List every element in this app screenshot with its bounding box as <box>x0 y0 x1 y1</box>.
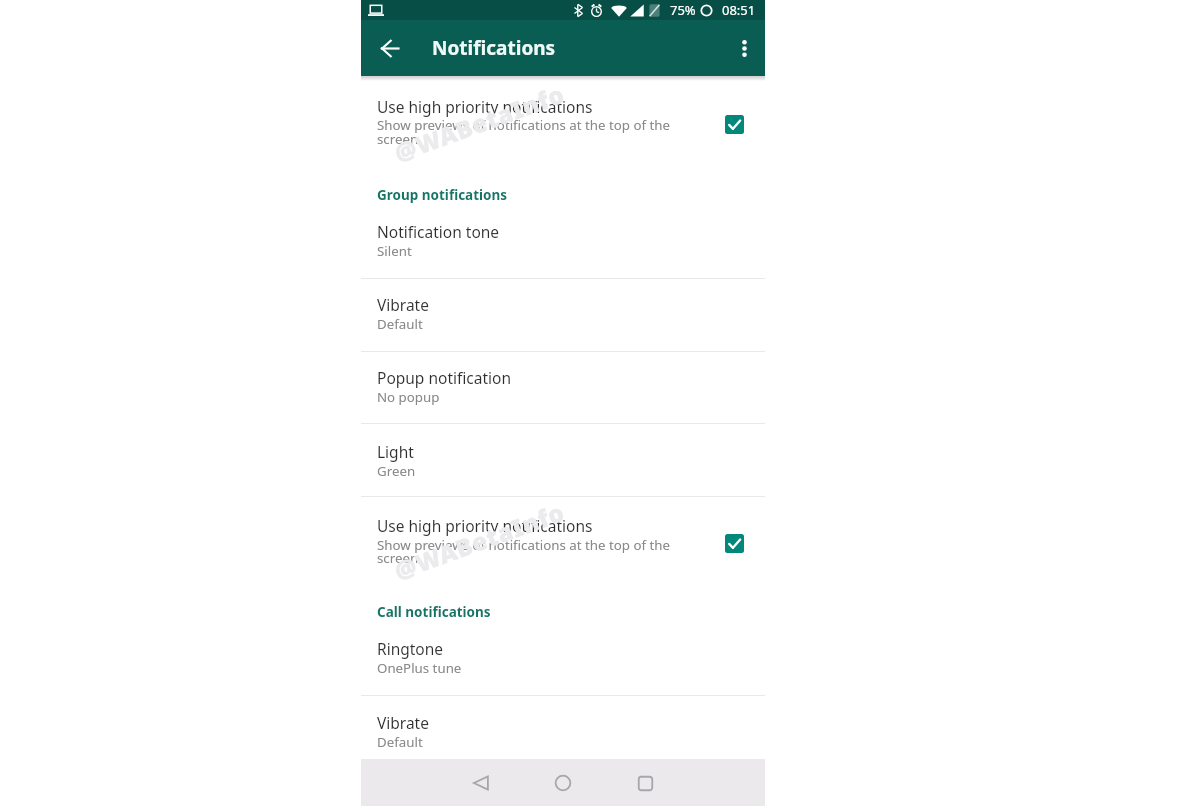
button[interactable]: Vibrate <box>361 706 765 760</box>
staticText: No popup <box>377 388 440 406</box>
staticText: Silent <box>377 242 412 260</box>
staticText: Show previews of notifications at the to… <box>377 116 671 134</box>
staticText: Ringtone <box>377 638 444 659</box>
staticText: OnePlus tune <box>377 659 462 677</box>
staticText: Notifications <box>432 35 556 61</box>
staticText: Green <box>377 462 416 480</box>
staticText: 08:51 <box>722 1 756 19</box>
staticText: Use high priority notifications <box>377 96 593 117</box>
button[interactable]: Use high priority notifications, enabled <box>725 534 744 553</box>
button[interactable]: Back <box>463 765 499 801</box>
staticText: Default <box>377 315 423 333</box>
button[interactable]: Popup notification <box>361 361 765 415</box>
button[interactable]: More options <box>728 32 760 64</box>
button[interactable]: Use high priority notifications <box>361 506 765 582</box>
staticText: 75% <box>670 1 696 19</box>
staticText: Call notifications <box>377 603 491 621</box>
button[interactable]: Home <box>545 765 581 801</box>
staticText: Popup notification <box>377 367 511 388</box>
staticText: Vibrate <box>377 294 429 315</box>
button[interactable]: Recents <box>627 765 663 801</box>
button[interactable]: Use high priority notifications, enabled <box>725 115 744 134</box>
staticText: Default <box>377 733 423 751</box>
button[interactable]: Vibrate <box>361 288 765 342</box>
button[interactable]: Ringtone <box>361 632 765 686</box>
staticText: Notification tone <box>377 221 500 242</box>
button[interactable]: Use high priority notifications <box>361 87 765 163</box>
staticText: Vibrate <box>377 712 429 733</box>
button[interactable]: Back <box>374 32 406 64</box>
staticText: screen <box>377 549 419 567</box>
staticText: Use high priority notifications <box>377 515 593 536</box>
button[interactable]: Notification tone <box>361 215 765 269</box>
staticText: screen <box>377 130 419 148</box>
staticText: Group notifications <box>377 186 508 204</box>
staticText: Show previews of notifications at the to… <box>377 536 671 554</box>
staticText: @WABetaInfo <box>390 77 569 169</box>
staticText: @WABetaInfo <box>390 495 569 587</box>
staticText: Light <box>377 441 414 462</box>
button[interactable]: Light <box>361 435 765 489</box>
